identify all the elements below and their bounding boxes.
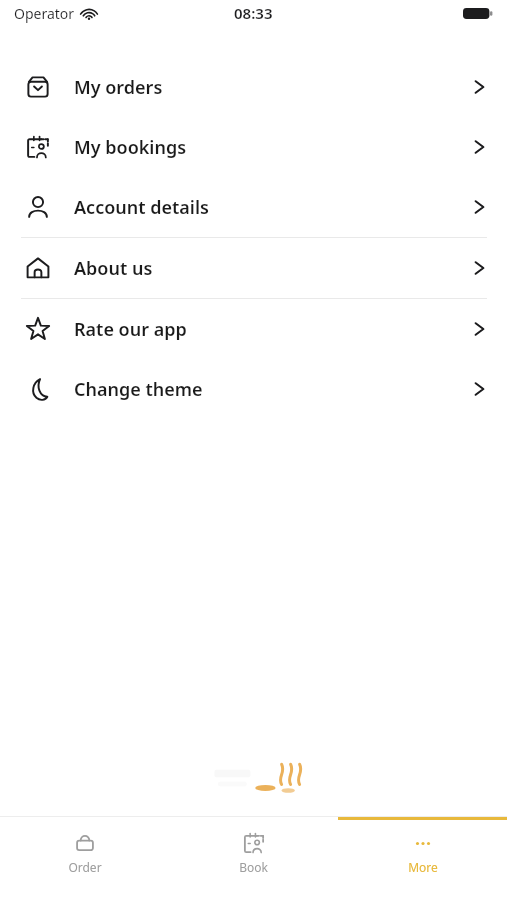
staticText: Change theme bbox=[74, 377, 203, 402]
staticText: 08:33 bbox=[234, 3, 273, 23]
button[interactable]: My bookings bbox=[0, 117, 507, 177]
staticText: Rate our app bbox=[74, 317, 187, 342]
staticText: More bbox=[408, 859, 438, 875]
staticText: Account details bbox=[74, 195, 209, 220]
button[interactable]: My orders bbox=[0, 57, 507, 117]
button[interactable]: Change theme bbox=[0, 359, 507, 419]
staticText: My orders bbox=[74, 75, 163, 100]
button[interactable]: Rate our app bbox=[0, 299, 507, 359]
staticText: My bookings bbox=[74, 135, 187, 160]
button[interactable]: Book bbox=[169, 817, 338, 900]
button[interactable]: About us bbox=[0, 238, 507, 298]
staticText: About us bbox=[74, 256, 153, 281]
staticText: Order bbox=[68, 859, 102, 875]
staticText: Book bbox=[239, 859, 268, 875]
button[interactable]: More bbox=[338, 817, 507, 900]
button[interactable]: Order bbox=[0, 817, 169, 900]
staticText: Operator bbox=[14, 4, 75, 23]
button[interactable]: Account details bbox=[0, 177, 507, 237]
